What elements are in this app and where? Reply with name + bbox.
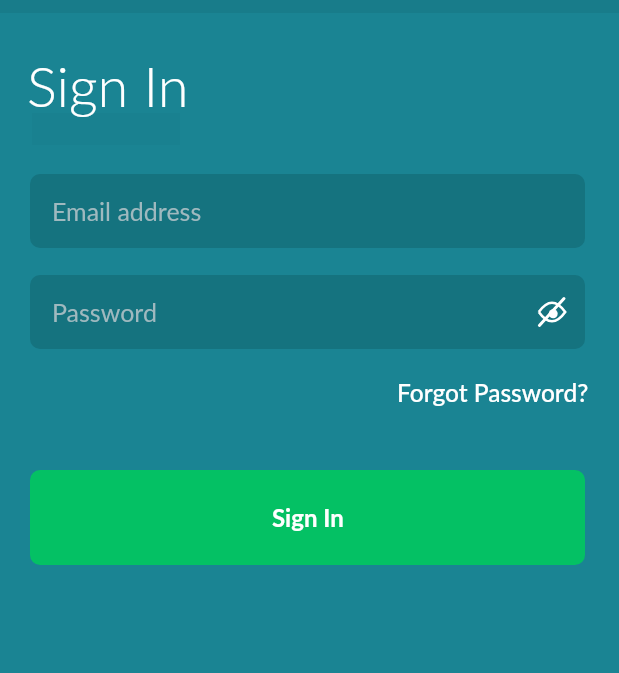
staticText: Sign In [272,503,344,532]
staticText: Email address [52,196,202,226]
button[interactable]: Password [30,275,585,349]
button[interactable]: Email address [30,174,585,248]
button[interactable] [533,293,571,331]
staticText: Password [52,297,157,327]
button[interactable]: Sign In [30,470,585,565]
staticText: Sign In [27,52,189,119]
button[interactable]: Forgot Password? [397,378,589,407]
